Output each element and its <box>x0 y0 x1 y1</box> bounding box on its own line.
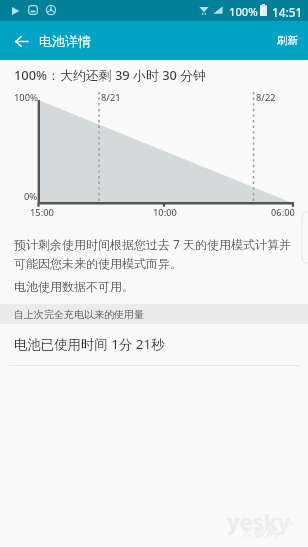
staticText: 电池已使用时间 1分 21秒 <box>14 335 165 353</box>
staticText: 电池详情 <box>39 33 91 49</box>
staticText: 电池使用数据不可用。 <box>14 279 134 294</box>
staticText: 自上次完全充电以来的使用量 <box>14 308 144 321</box>
staticText: 10:00 <box>153 206 177 219</box>
button[interactable]: 刷新 <box>267 26 308 55</box>
staticText: 100%：大约还剩 39 小时 30 分钟 <box>14 66 207 84</box>
staticText: .com <box>279 519 293 527</box>
staticText: 天极网 <box>241 524 279 539</box>
staticText: 100% <box>14 91 38 104</box>
staticText: 预计剩余使用时间根据您过去 7 天的使用模式计算并 可能因您未来的使用模式而异。 <box>14 236 292 272</box>
staticText: yesky <box>227 506 290 536</box>
staticText: 8/22 <box>256 91 276 104</box>
staticText: 0% <box>24 190 38 203</box>
staticText: 100% <box>229 4 258 19</box>
staticText: 刷新 <box>277 34 298 47</box>
button[interactable]: Back <box>6 26 36 56</box>
staticText: 14:51 <box>272 4 303 20</box>
button[interactable]: 电池已使用时间 1分 21秒 <box>0 324 308 365</box>
staticText: 8/21 <box>101 91 121 104</box>
staticText: 06:00 <box>271 206 295 219</box>
staticText: 15:00 <box>30 206 54 219</box>
